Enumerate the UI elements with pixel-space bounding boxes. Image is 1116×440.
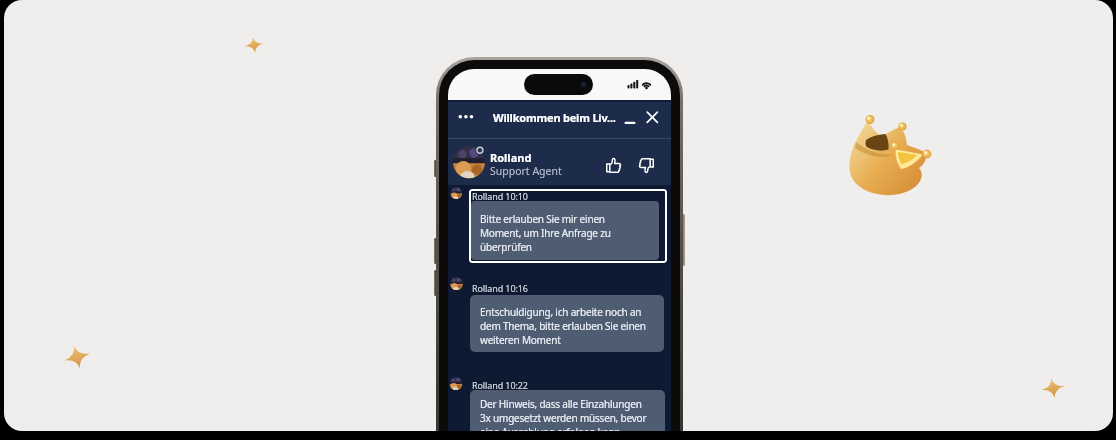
button[interactable]: [470, 295, 664, 352]
staticText: Der Hinweis, dass alle Einzahlungen 3x u…: [480, 397, 647, 431]
staticText: Rolland: [490, 150, 532, 165]
staticText: Bitte erlauben Sie mir einen Moment, um …: [480, 212, 611, 254]
button[interactable]: [644, 109, 661, 126]
staticText: Willkommen beim Liv...: [493, 110, 616, 125]
staticText: Rolland 10:16: [472, 282, 528, 294]
button[interactable]: [470, 390, 665, 431]
staticText: Rolland 10:22: [472, 379, 528, 391]
button[interactable]: [620, 113, 638, 127]
staticText: Entschuldigung, ich arbeite noch an dem …: [480, 305, 646, 347]
button[interactable]: [600, 153, 626, 177]
button[interactable]: [469, 189, 667, 263]
button[interactable]: [633, 153, 659, 177]
staticText: Support Agent: [490, 164, 562, 178]
staticText: Rolland 10:10: [472, 190, 528, 202]
